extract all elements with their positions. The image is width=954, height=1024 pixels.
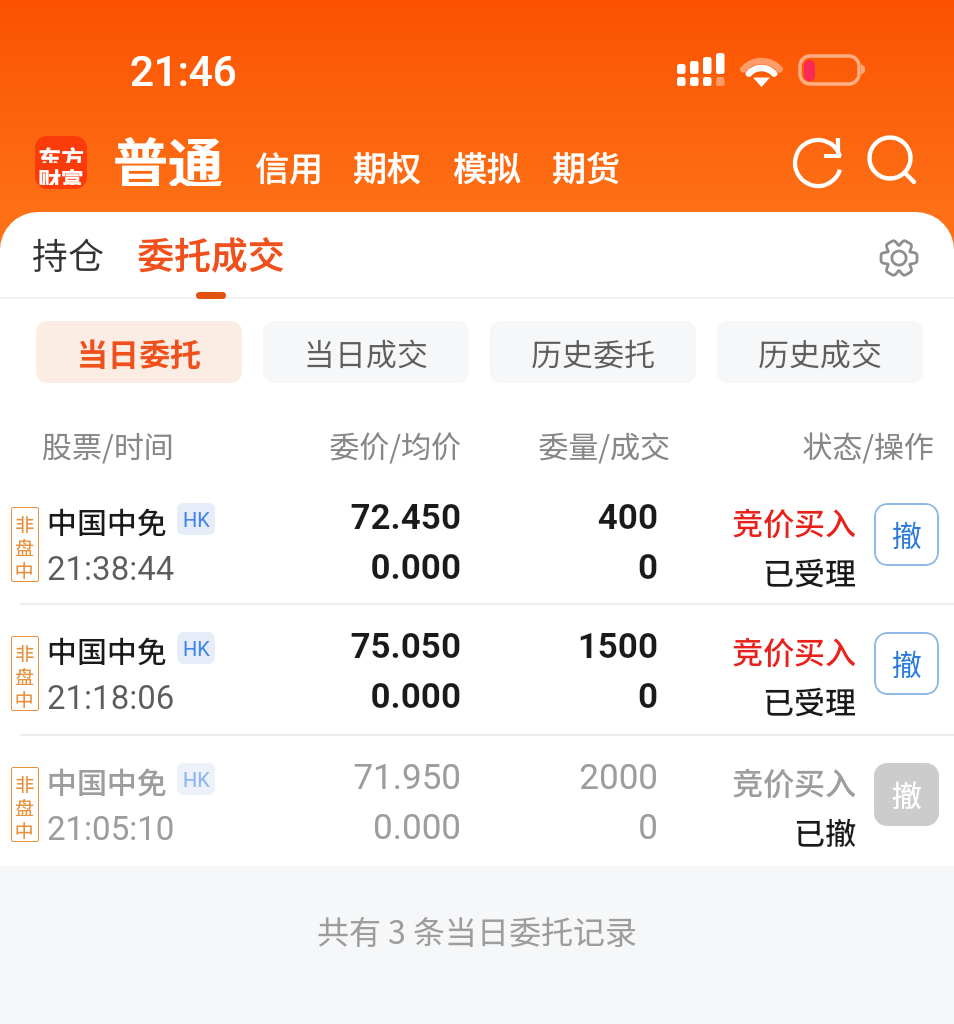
button[interactable]: 撤 [874, 503, 939, 566]
staticText: HK [183, 637, 210, 660]
button[interactable]: 当日成交 [263, 321, 469, 383]
staticText: 中 [15, 685, 35, 708]
staticText: 21:38:44 [47, 549, 175, 588]
staticText: 当日成交 [304, 330, 428, 375]
staticText: 中 [15, 556, 35, 579]
staticText: 竞价买入 [576, 628, 856, 673]
staticText: 撤 [892, 772, 922, 815]
staticText: 委量/成交 [390, 423, 670, 466]
button[interactable]: 委托成交 [131, 212, 291, 297]
staticText: 0 [378, 807, 658, 848]
button[interactable]: 撤 [874, 763, 939, 826]
staticText: 撤 [892, 641, 922, 684]
button[interactable]: Refresh [791, 135, 845, 189]
staticText: 21:46 [130, 47, 237, 96]
staticText: 已受理 [576, 549, 856, 594]
staticText: 21:05:10 [47, 809, 175, 848]
staticText: 0.000 [181, 676, 461, 717]
staticText: 撤 [892, 512, 922, 555]
button[interactable]: 期权 [344, 140, 430, 192]
staticText: HK [183, 508, 210, 531]
button[interactable]: 撤 [874, 632, 939, 695]
staticText: 中国中免 [47, 628, 167, 671]
staticText: 盘 [15, 662, 35, 685]
button[interactable]: 当日委托 [36, 321, 242, 383]
staticText: 非 [15, 770, 35, 793]
staticText: 竞价买入 [576, 499, 856, 544]
staticText: 盘 [15, 793, 35, 816]
staticText: 期权 [353, 142, 421, 191]
button[interactable]: 历史委托 [490, 321, 696, 383]
staticText: 0.000 [181, 547, 461, 588]
staticText: 方 [61, 140, 84, 163]
staticText: 1500 [378, 626, 658, 667]
staticText: 2000 [378, 757, 658, 798]
staticText: 非 [15, 510, 35, 533]
staticText: 75.050 [181, 626, 461, 667]
button[interactable]: 非 [0, 604, 954, 733]
staticText: 富 [61, 162, 84, 185]
staticText: 0 [378, 676, 658, 717]
staticText: 模拟 [453, 142, 521, 191]
staticText: 股票/时间 [42, 423, 174, 466]
button[interactable]: 信用 [246, 140, 332, 192]
staticText: 已撤 [576, 809, 856, 854]
button[interactable]: 非 [0, 735, 954, 864]
staticText: HK [183, 768, 210, 791]
staticText: 当日委托 [77, 330, 201, 375]
staticText: 71.950 [181, 757, 461, 798]
staticText: 委托成交 [137, 226, 285, 280]
staticText: 期货 [552, 142, 620, 191]
staticText: 持仓 [32, 227, 105, 279]
staticText: 72.450 [181, 497, 461, 538]
button[interactable]: Search [871, 136, 925, 190]
staticText: 委价/均价 [181, 423, 461, 466]
staticText: 信用 [255, 142, 323, 191]
staticText: 状态/操作 [654, 423, 934, 466]
staticText: 0 [378, 547, 658, 588]
staticText: 盘 [15, 533, 35, 556]
staticText: 非 [15, 639, 35, 662]
staticText: 400 [378, 497, 658, 538]
button[interactable]: 非 [0, 475, 954, 604]
staticText: 历史委托 [531, 330, 655, 375]
staticText: 中国中免 [47, 499, 167, 542]
staticText: 已受理 [576, 678, 856, 723]
button[interactable]: Settings [873, 232, 925, 284]
button[interactable]: 普通 [110, 120, 226, 186]
button[interactable]: 期货 [543, 140, 629, 192]
staticText: 普通 [113, 120, 224, 186]
button[interactable]: 持仓 [22, 212, 114, 297]
staticText: 财 [38, 162, 61, 185]
staticText: 竞价买入 [576, 759, 856, 804]
button[interactable]: 历史成交 [717, 321, 923, 383]
staticText: 东 [38, 140, 61, 163]
staticText: 21:18:06 [47, 678, 175, 717]
staticText: 历史成交 [758, 330, 882, 375]
staticText: 中国中免 [47, 759, 167, 802]
staticText: 0.000 [181, 807, 461, 848]
staticText: 中 [15, 816, 35, 839]
button[interactable]: 模拟 [444, 140, 530, 192]
staticText: 共有 3 条当日委托记录 [0, 907, 954, 953]
